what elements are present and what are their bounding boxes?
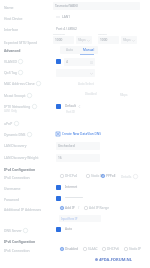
button[interactable]: Auto	[60, 46, 79, 54]
staticText: Upload	[98, 32, 107, 35]
button[interactable]: Checkbox	[56, 196, 61, 201]
staticText: Disabled	[65, 247, 79, 251]
button[interactable]: Static IP	[86, 174, 104, 178]
staticText: Port 4 / 48562	[56, 27, 77, 31]
staticText: Username	[4, 186, 21, 191]
staticText: Disabled	[85, 92, 97, 96]
staticText: SLAAC	[88, 247, 98, 251]
button[interactable]: Manual	[79, 46, 98, 54]
staticText: Add IP	[65, 206, 75, 210]
staticText: Manual	[83, 48, 95, 52]
button[interactable]: Add IP	[60, 206, 75, 210]
button[interactable]: 16	[58, 154, 98, 162]
staticText: IPTV Networking	[4, 104, 31, 109]
staticText: Mbps	[78, 38, 87, 42]
staticText: IPv4 Connection	[4, 175, 30, 180]
button[interactable]: DHCPv6	[102, 247, 120, 251]
button[interactable]: Input Here IP	[61, 215, 99, 222]
staticText: Input Here IP	[61, 217, 99, 221]
staticText: VLAN ID	[4, 59, 17, 64]
staticText: IPv6 Connection	[4, 248, 30, 253]
staticText: DHCPv6	[107, 247, 120, 251]
button[interactable]: Mbps	[123, 36, 135, 44]
staticText: 4PDA-FORUM.NL	[99, 257, 133, 262]
staticText: Add IP Range	[89, 206, 110, 210]
button[interactable]: Static IP	[124, 247, 142, 251]
button[interactable]: 4	[66, 58, 93, 66]
staticText: IPv6 Configuration	[4, 239, 36, 244]
staticText: IPv4 Configuration	[4, 167, 36, 172]
button[interactable]: Tasmota (WAN)	[55, 2, 138, 10]
button[interactable]: Default	[65, 104, 81, 108]
button[interactable]: Checkbox	[56, 104, 61, 109]
staticText: LAN Discovery Weight	[4, 155, 39, 160]
button[interactable]: Unchecked	[58, 142, 98, 150]
staticText: Default	[65, 104, 76, 108]
button[interactable]: Add IP Range	[84, 206, 110, 210]
staticText: Mbps	[123, 38, 132, 42]
staticText: Host Device	[4, 16, 23, 21]
staticText: Advanced	[4, 48, 21, 53]
staticText: Port ID	[66, 110, 75, 114]
staticText: Dynamic DNS	[4, 132, 26, 137]
staticText: 1000	[100, 38, 117, 42]
staticText: Static IP	[129, 247, 142, 251]
button[interactable]: Checkbox	[56, 185, 61, 190]
staticText: Password	[4, 197, 20, 202]
button[interactable]: LAN1	[56, 15, 70, 19]
staticText: LAN1	[62, 15, 70, 19]
staticText: /	[78, 206, 80, 210]
staticText: PPPoE	[106, 174, 116, 178]
staticText: LAN Discovery	[4, 143, 27, 148]
staticText: Expected MTU Speed	[4, 40, 38, 45]
staticText: MAC Address Clone	[4, 81, 35, 86]
staticText: Auto	[65, 227, 73, 231]
staticText: Name	[4, 5, 14, 10]
staticText: Mcast Snoopt	[4, 93, 26, 98]
staticText: Unchecked	[58, 144, 98, 148]
staticText: Interface	[4, 27, 19, 32]
button[interactable]: Checkbox	[56, 227, 61, 232]
button[interactable]: Disabled	[60, 247, 79, 251]
button[interactable]: Checkbox	[56, 59, 61, 64]
staticText: DHCPv4	[65, 174, 78, 178]
button[interactable]: Create New DataVlan DNS	[56, 132, 101, 136]
button[interactable]: Mbps	[78, 36, 90, 44]
staticText: Create New DataVlan DNS	[62, 132, 101, 136]
button[interactable]: Details	[121, 174, 138, 179]
staticText: Auto Select	[78, 82, 94, 86]
button[interactable]: PPPoE	[101, 174, 116, 178]
staticText: QoS Tag	[4, 70, 17, 75]
staticText: Internet	[65, 185, 78, 189]
staticText: 1000	[55, 38, 72, 42]
staticText: LAN1 Only	[4, 109, 17, 113]
staticText: Download	[53, 32, 65, 35]
staticText: 16	[58, 156, 98, 160]
staticText: uPnP	[4, 121, 13, 126]
button[interactable]: 1000	[55, 36, 72, 44]
staticText: DNS Server	[4, 228, 22, 233]
staticText: 4	[66, 60, 90, 64]
staticText: Details	[121, 175, 132, 179]
staticText: Tasmota (WAN)	[55, 4, 138, 8]
button[interactable]: 1000	[100, 36, 117, 44]
staticText: Auto	[66, 48, 74, 52]
button[interactable]: SLAAC	[83, 247, 98, 251]
staticText: Mbps	[120, 93, 128, 97]
staticText: Static IP	[91, 174, 104, 178]
staticText: Additional IP Addresses	[4, 207, 42, 212]
button[interactable]: DHCPv4	[60, 174, 78, 178]
